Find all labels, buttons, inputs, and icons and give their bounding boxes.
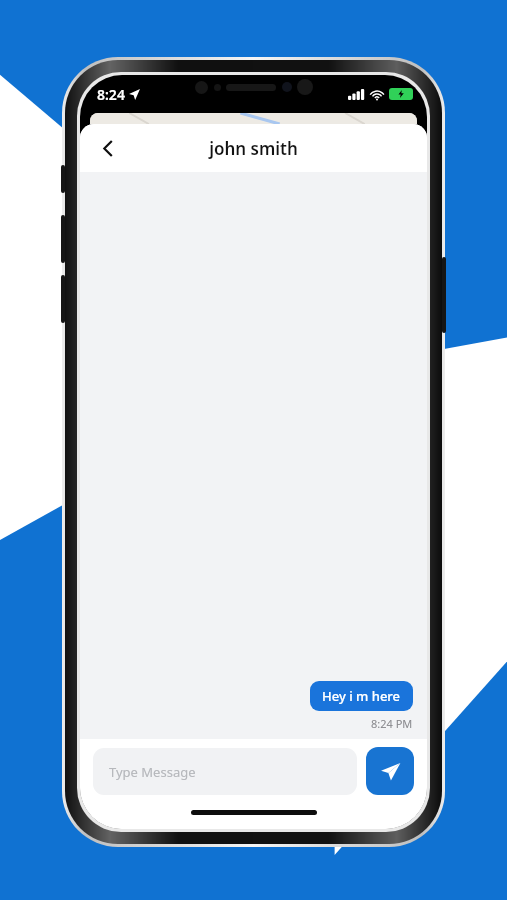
- button[interactable]: Back: [88, 128, 128, 168]
- staticText: john smith: [209, 137, 298, 160]
- button[interactable]: Hey i m here: [310, 681, 413, 711]
- staticText: 8:24: [97, 85, 125, 104]
- staticText: 8:24 PM: [371, 716, 413, 731]
- button[interactable]: Type Message: [93, 748, 357, 795]
- button[interactable]: Send: [366, 747, 414, 795]
- staticText: Hey i m here: [322, 687, 401, 705]
- staticText: Type Message: [109, 763, 196, 781]
